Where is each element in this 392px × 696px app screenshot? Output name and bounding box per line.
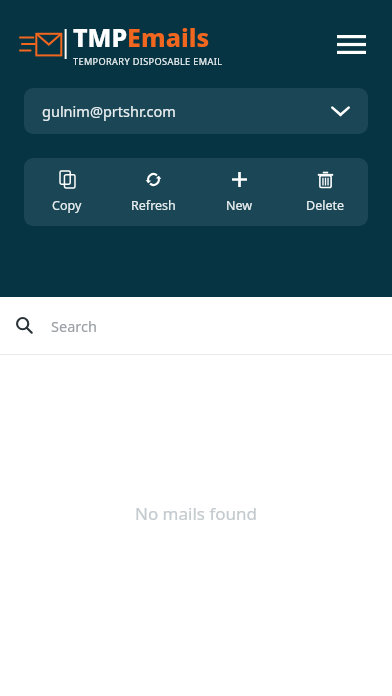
staticText: Refresh [131, 197, 176, 214]
staticText: Search [51, 316, 97, 336]
button[interactable]: Search [0, 297, 392, 354]
button[interactable]: New [196, 158, 282, 226]
button[interactable]: Copy [24, 158, 110, 226]
staticText: Copy [52, 197, 82, 214]
button[interactable]: Refresh [110, 158, 196, 226]
staticText: TMPEmails [73, 20, 210, 54]
button[interactable]: gulnim@prtshr.com [24, 88, 368, 134]
staticText: gulnim@prtshr.com [42, 101, 176, 121]
staticText: Delete [306, 197, 345, 214]
staticText: New [226, 197, 253, 214]
button[interactable]: Menu [328, 21, 374, 67]
staticText: TEMPORARY DISPOSABLE EMAIL [73, 55, 223, 68]
staticText: No mails found [135, 502, 257, 525]
button[interactable]: Delete [282, 158, 368, 226]
